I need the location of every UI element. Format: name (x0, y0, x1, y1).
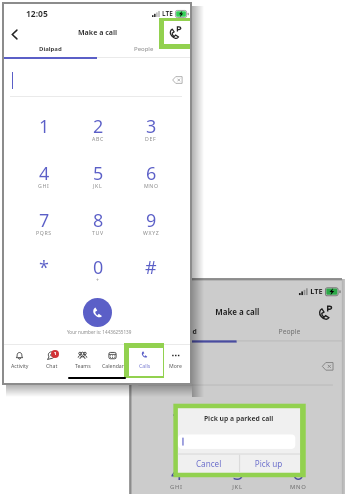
staticText: GHI (38, 182, 50, 189)
button[interactable]: Call (83, 298, 112, 327)
button[interactable]: Backspace (169, 72, 185, 88)
button[interactable]: Back (4, 24, 24, 44)
staticText: Chat (46, 362, 58, 369)
staticText: JKL (93, 182, 103, 189)
button[interactable]: 7 (20, 203, 68, 237)
staticText: 6 (292, 458, 305, 486)
staticText: 1 (171, 405, 183, 433)
button[interactable]: 2 (211, 399, 265, 438)
staticText: ABC (92, 135, 104, 142)
button[interactable]: 1 (150, 399, 204, 438)
staticText: Calls (139, 362, 151, 369)
button[interactable]: 5 (211, 452, 265, 491)
staticText: LTE (310, 286, 323, 296)
staticText: Dialpad (39, 45, 62, 53)
staticText: Activity (11, 362, 29, 369)
staticText: 12:05 (26, 8, 48, 20)
staticText: Dialpad (171, 327, 197, 336)
staticText: + (96, 276, 100, 283)
button[interactable]: Teams (67, 346, 98, 372)
staticText: 7 (39, 208, 50, 233)
staticText: People (279, 327, 301, 336)
staticText: ABC (231, 429, 245, 436)
staticText: * (39, 255, 49, 280)
staticText: Cancel (196, 458, 222, 469)
button[interactable]: Pick up a parked call (166, 23, 186, 43)
staticText: People (134, 45, 154, 53)
button[interactable]: Dialpad (4, 42, 97, 56)
button[interactable]: Chat (36, 346, 67, 372)
staticText: JKL (232, 482, 243, 490)
staticText: Make a call (215, 307, 260, 319)
button[interactable]: 4 (20, 156, 68, 190)
staticText: 6 (146, 161, 157, 186)
staticText: Pick up (255, 458, 283, 469)
staticText: 8 (93, 208, 104, 233)
button[interactable]: 3 (271, 399, 325, 438)
staticText: 4 (39, 161, 50, 186)
staticText: Your number is: 14436255139 (67, 329, 132, 335)
staticText: 1 (39, 114, 50, 139)
staticText: Make a call (78, 28, 118, 38)
staticText: 3 (146, 114, 157, 139)
button[interactable]: More (160, 346, 191, 372)
button[interactable]: Calls (129, 346, 160, 372)
staticText: Calendar (102, 362, 124, 369)
button[interactable]: 9 (127, 203, 175, 237)
staticText: More (169, 362, 182, 369)
button[interactable]: Calendar (97, 346, 128, 372)
button[interactable]: # (127, 250, 175, 284)
staticText: LTE (162, 9, 173, 18)
button[interactable]: Pick up (239, 455, 299, 473)
staticText: DEF (145, 135, 157, 142)
button[interactable]: 8 (74, 203, 122, 237)
button[interactable]: People (97, 42, 190, 56)
staticText: GHI (170, 482, 183, 490)
staticText: 1 (54, 351, 57, 357)
button[interactable]: 6 (271, 452, 325, 491)
staticText: DEF (291, 429, 305, 436)
staticText: MNO (144, 182, 159, 189)
staticText: Pick up a parked call (204, 414, 274, 423)
button[interactable]: Cancel (178, 455, 239, 473)
staticText: WXYZ (143, 229, 160, 236)
button[interactable]: 2 (74, 109, 122, 143)
staticText: # (145, 255, 157, 280)
button[interactable]: 1 (20, 109, 68, 143)
button[interactable]: Activity (4, 346, 35, 372)
button[interactable]: * (20, 250, 68, 284)
button[interactable]: Dialpad (131, 323, 237, 339)
staticText: Teams (75, 362, 91, 369)
staticText: MNO (290, 482, 307, 490)
button[interactable]: People (237, 323, 342, 339)
button[interactable]: Backspace (318, 357, 336, 375)
staticText: 0 (93, 255, 104, 280)
staticText: 2 (93, 114, 104, 139)
button[interactable]: 5 (74, 156, 122, 190)
staticText: PQRS (36, 229, 52, 236)
button[interactable]: 4 (150, 452, 204, 491)
staticText: TUV (92, 229, 104, 236)
button[interactable]: 0 (74, 250, 122, 284)
staticText: 3 (292, 405, 305, 433)
button[interactable] (178, 434, 296, 449)
button[interactable]: Pick up a parked call (315, 302, 337, 324)
button[interactable]: 3 (127, 109, 175, 143)
staticText: 4 (171, 458, 183, 486)
staticText: 9 (146, 208, 157, 233)
staticText: 5 (232, 458, 245, 486)
staticText: 5 (93, 161, 104, 186)
button[interactable]: 6 (127, 156, 175, 190)
staticText: 2 (232, 405, 245, 433)
